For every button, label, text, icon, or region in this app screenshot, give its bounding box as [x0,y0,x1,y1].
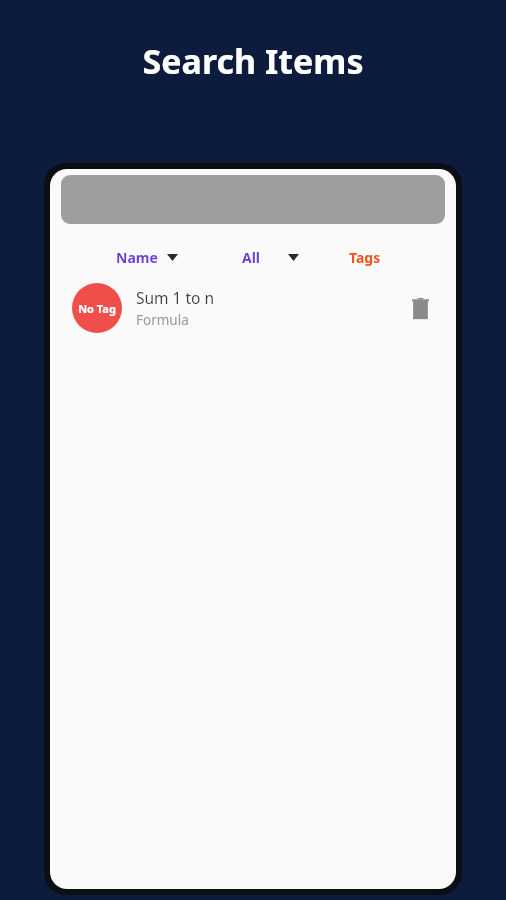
button[interactable]: Name [112,244,182,271]
staticText: Tags [349,248,381,267]
button[interactable]: Delete [400,288,440,328]
button[interactable]: Search [61,175,445,224]
button[interactable]: Tags [345,244,385,271]
button[interactable]: No Tag [50,277,456,339]
staticText: No Tag [78,301,116,316]
staticText: All [242,248,261,267]
button[interactable]: All [238,244,303,271]
staticText: Sum 1 to n [136,287,215,308]
staticText: Name [116,248,158,267]
staticText: Search Items [0,38,506,84]
staticText: Formula [136,311,189,329]
